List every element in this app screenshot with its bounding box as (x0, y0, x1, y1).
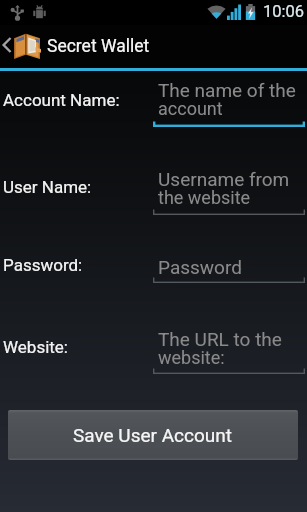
button[interactable]: Password: (153, 277, 305, 285)
staticText: The name of the (158, 79, 296, 101)
staticText: website: (158, 347, 225, 368)
button[interactable]: User Name: (153, 209, 305, 217)
button[interactable]: Save User Account (8, 410, 298, 460)
staticText: Password (158, 256, 242, 278)
staticText: Username from (158, 168, 290, 190)
staticText: Password: (3, 255, 83, 275)
staticText: Secret Wallet (47, 36, 150, 57)
button[interactable]: Website: (153, 368, 305, 376)
staticText: Save User Account (73, 424, 233, 446)
staticText: account (158, 98, 223, 119)
staticText: the website (158, 187, 251, 208)
staticText: 10:06 (263, 2, 305, 21)
staticText: The URL to the (158, 328, 282, 350)
button[interactable]: Navigate up (0, 25, 44, 68)
staticText: Account Name: (3, 90, 120, 110)
button[interactable]: Account Name: (153, 121, 305, 129)
staticText: User Name: (3, 177, 92, 197)
staticText: Website: (3, 337, 68, 357)
